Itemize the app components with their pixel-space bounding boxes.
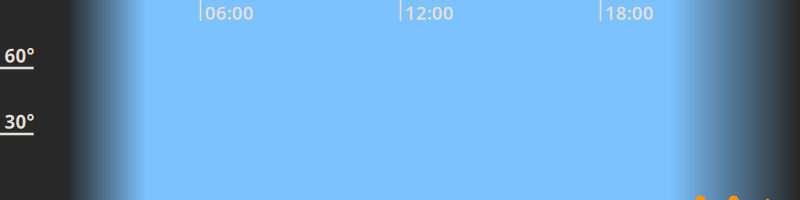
staticText: 06:00	[205, 0, 254, 25]
staticText: 12:00	[405, 0, 454, 25]
staticText: 60°	[4, 43, 34, 68]
staticText: 30°	[4, 109, 34, 134]
staticText: 18:00	[605, 0, 654, 25]
